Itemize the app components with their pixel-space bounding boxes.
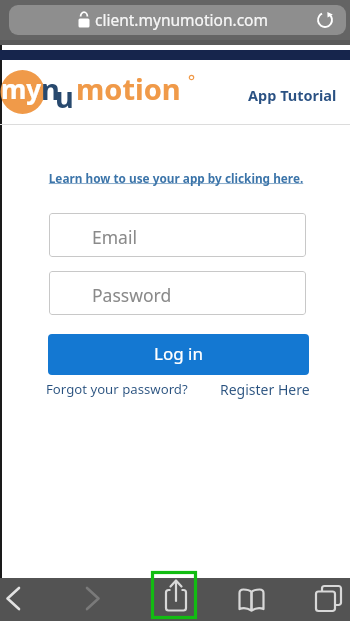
button[interactable]: Learn how to use your app by clicking he… (40, 168, 312, 188)
staticText: Email (92, 225, 137, 249)
button[interactable]: Forgot your password? (46, 380, 188, 398)
button[interactable]: Log in (48, 334, 309, 375)
staticText: my (1, 71, 42, 106)
staticText: client.mynumotion.com (95, 9, 268, 30)
button[interactable]: Email (49, 213, 306, 257)
button[interactable] (156, 580, 196, 618)
button[interactable]: Password (49, 271, 306, 315)
staticText: n (41, 69, 60, 108)
button[interactable]: client.mynumotion.com (9, 5, 346, 35)
staticText: motion (76, 69, 181, 108)
button[interactable]: Register Here (220, 380, 310, 399)
button[interactable] (231, 582, 271, 618)
staticText: u (55, 77, 74, 116)
button[interactable]: App Tutorial (248, 85, 337, 105)
staticText: Learn how to use your app by clicking he… (40, 170, 312, 186)
staticText: Password (92, 283, 172, 307)
staticText: Log in (154, 342, 203, 365)
button[interactable] (2, 582, 36, 618)
button[interactable] (308, 582, 348, 618)
button[interactable] (80, 582, 114, 618)
